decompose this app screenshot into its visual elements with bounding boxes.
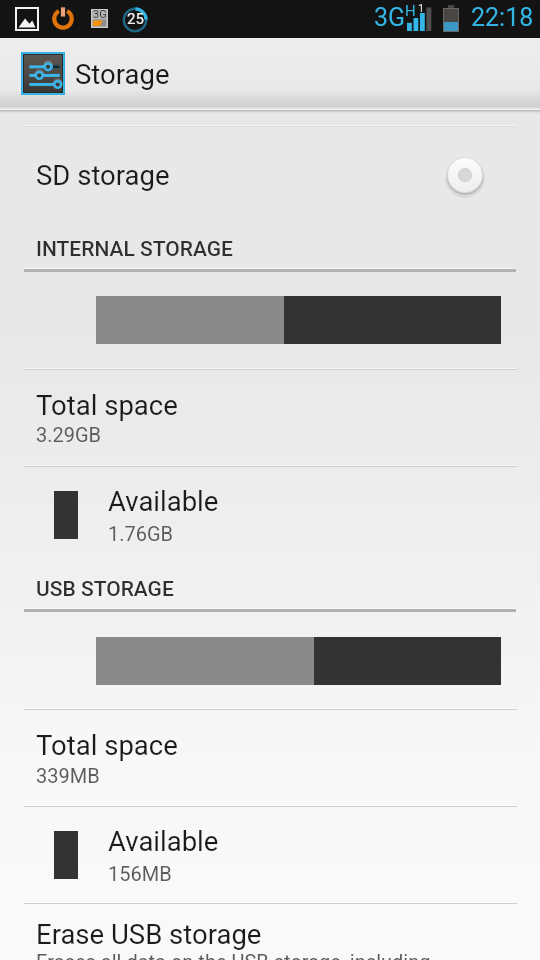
button[interactable]: SD storage [0,127,540,222]
staticText: 156MB [108,862,172,885]
button[interactable]: Available [0,467,540,563]
staticText: SD storage [36,159,170,191]
staticText: Available [108,825,219,857]
staticText: Available [108,485,219,517]
staticText: 1.76GB [108,522,174,545]
staticText: 3G [374,3,406,32]
button[interactable]: Select SD storage [443,153,487,197]
staticText: 339MB [36,764,100,787]
button[interactable]: Available [0,807,540,903]
button[interactable]: Storage [0,38,170,110]
staticText: 1 [418,2,425,15]
staticText: 25 [127,10,144,28]
button[interactable]: Erase USB storage [0,904,540,960]
staticText: Erase USB storage [36,918,262,950]
staticText: USB STORAGE [36,577,174,602]
button[interactable]: Total space [0,370,540,466]
staticText: Total space [36,729,178,761]
button[interactable]: Total space [0,710,540,806]
staticText: 22:18 [471,3,534,32]
staticText: Storage [75,58,170,90]
staticText: Total space [36,389,178,421]
staticText: 3.29GB [36,423,102,446]
staticText: INTERNAL STORAGE [36,237,233,262]
staticText: 3G [93,8,107,21]
staticText: Erases all data on the USB storage, incl… [36,950,431,960]
staticText: H [405,2,416,20]
